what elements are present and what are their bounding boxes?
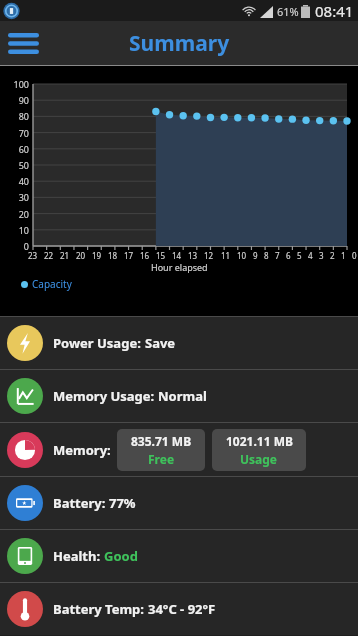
staticText: 9 [253,250,258,261]
button[interactable]: Memory Usage: [0,370,358,422]
staticText: 8 [264,250,269,261]
button[interactable]: Battery: [0,477,358,529]
staticText: 14 [172,250,182,261]
staticText: 20 [0,208,29,220]
staticText: 11 [221,250,231,261]
staticText: 835.71 MB [131,433,192,449]
staticText: 13 [188,250,198,261]
staticText: 90 [0,94,29,106]
staticText: Battery: [53,494,109,512]
staticText: 12 [204,250,214,261]
staticText: 61% [277,4,299,19]
button[interactable]: Battery Temp: [0,583,358,635]
staticText: Normal [158,387,207,405]
staticText: Capacity [32,277,72,291]
staticText: 70 [0,127,29,139]
staticText: 0 [0,240,29,252]
button[interactable]: Health: [0,530,358,582]
staticText: 34°C - 92°F [148,600,216,618]
button[interactable]: Open navigation drawer [0,21,46,66]
button[interactable]: Memory: [0,423,358,476]
staticText: 08:41 [315,1,354,21]
button[interactable]: Power Usage: [0,317,358,369]
staticText: 30 [0,191,29,203]
staticText: 10 [237,250,247,261]
staticText: 0 [352,250,357,261]
staticText: Summary [129,29,230,58]
staticText: 15 [156,250,166,261]
staticText: 50 [0,159,29,171]
staticText: 19 [92,250,102,261]
staticText: 100 [0,78,29,90]
staticText: 2 [330,250,335,261]
staticText: 77% [109,494,136,512]
staticText: 17 [124,250,134,261]
staticText: 16 [140,250,150,261]
staticText: 1021.11 MB [226,433,293,449]
staticText: 1 [341,250,346,261]
staticText: 18 [108,250,118,261]
staticText: 10 [0,224,29,236]
staticText: 5 [297,250,302,261]
staticText: 80 [0,110,29,122]
staticText: 21 [60,250,70,261]
staticText: Memory: [53,441,111,459]
staticText: Memory Usage: [53,387,158,405]
staticText: 7 [275,250,280,261]
staticText: 6 [286,250,291,261]
staticText: 60 [0,143,29,155]
staticText: 3 [319,250,324,261]
button[interactable]: 1021.11 MB [212,429,306,471]
staticText: Hour elapsed [151,261,208,273]
staticText: 4 [308,250,313,261]
staticText: 22 [44,250,54,261]
staticText: Usage [240,451,278,467]
staticText: Save [145,334,176,352]
staticText: 20 [76,250,86,261]
staticText: Power Usage: [53,334,145,352]
staticText: 40 [0,175,29,187]
staticText: Good [104,547,138,565]
staticText: 23 [28,250,38,261]
staticText: Free [148,451,175,467]
staticText: Battery Temp: [53,600,148,618]
staticText: Health: [53,547,104,565]
button[interactable]: 835.71 MB [117,429,205,471]
